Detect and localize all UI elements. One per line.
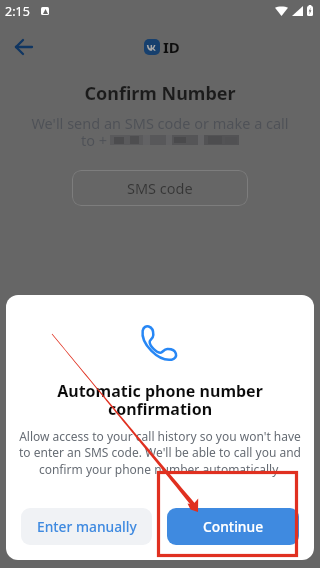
staticText: Continue	[203, 517, 264, 536]
button[interactable]: Back	[9, 32, 39, 62]
staticText: 2:15	[5, 3, 30, 20]
staticText: to +	[81, 130, 108, 150]
staticText: Automatic phone number confirmation	[32, 380, 288, 420]
button[interactable]: SMS code	[72, 170, 248, 206]
staticText: Allow access to your call history so you…	[16, 428, 304, 478]
button[interactable]: Continue	[167, 508, 299, 545]
staticText: ID	[163, 37, 180, 57]
staticText: Enter manually	[37, 517, 137, 536]
staticText: SMS code	[127, 178, 193, 198]
button[interactable]: Enter manually	[21, 508, 152, 545]
staticText: We'll send an SMS code or make a call	[0, 113, 320, 133]
staticText: Confirm Number	[0, 81, 320, 106]
